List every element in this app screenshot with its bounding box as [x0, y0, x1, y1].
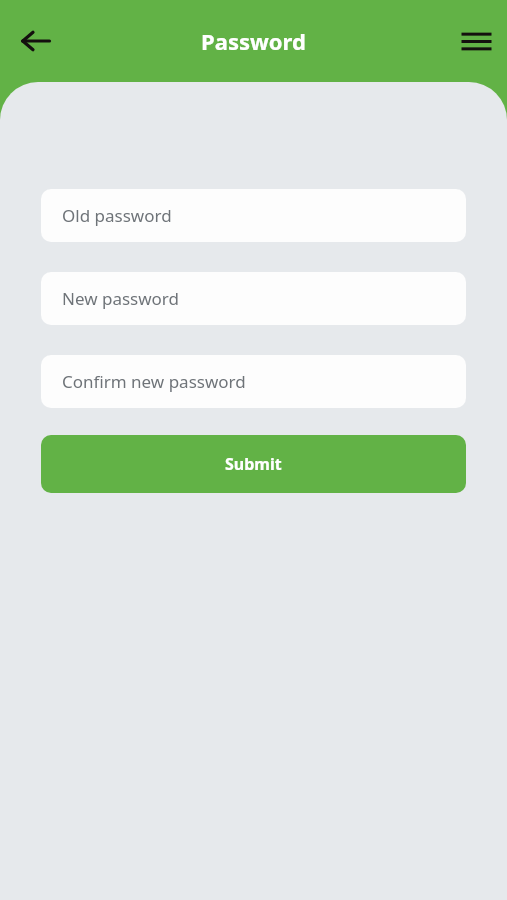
staticText: Confirm new password [62, 370, 246, 393]
button[interactable]: New password [41, 272, 466, 325]
button[interactable]: Menu [452, 17, 500, 65]
button[interactable]: Confirm new password [41, 355, 466, 408]
button[interactable]: Back [12, 17, 60, 65]
button[interactable]: Submit [41, 435, 466, 493]
staticText: Old password [62, 204, 172, 227]
staticText: Submit [225, 453, 282, 475]
staticText: New password [62, 287, 180, 310]
button[interactable]: Old password [41, 189, 466, 242]
staticText: Password [0, 26, 507, 56]
